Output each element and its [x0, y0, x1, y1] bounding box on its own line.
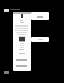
button[interactable]: [31, 12, 49, 20]
button[interactable]: [13, 12, 31, 71]
button[interactable]: [31, 37, 49, 42]
